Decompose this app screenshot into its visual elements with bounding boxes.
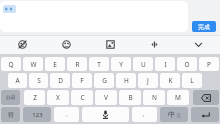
staticText: L — [190, 76, 194, 85]
button[interactable]: C — [71, 90, 93, 105]
staticText: Z — [33, 93, 37, 102]
staticText: T — [97, 60, 101, 69]
button[interactable]: N — [143, 90, 165, 105]
staticText: G — [102, 76, 107, 85]
button[interactable]: E — [45, 57, 65, 71]
button[interactable]: Move cursor — [132, 35, 176, 54]
staticText: X — [56, 93, 60, 102]
button[interactable]: I — [155, 57, 175, 71]
staticText: Q — [8, 60, 14, 69]
staticText: 中 — [168, 110, 175, 119]
button[interactable]: ， — [54, 107, 79, 122]
button[interactable]: V — [95, 90, 117, 105]
button[interactable]: Y — [111, 57, 131, 71]
staticText: 完成 — [198, 23, 210, 31]
button[interactable]: D — [50, 73, 70, 88]
staticText: W — [30, 60, 37, 69]
button[interactable]: X — [47, 90, 69, 105]
button[interactable]: U — [133, 57, 153, 71]
button[interactable]: L — [182, 73, 202, 88]
staticText: 。 — [142, 111, 148, 118]
button[interactable]: Backspace — [193, 90, 219, 105]
staticText: J — [147, 76, 149, 85]
button[interactable]: B — [119, 90, 141, 105]
button[interactable]: J — [138, 73, 158, 88]
staticText: D — [58, 76, 63, 85]
staticText: A — [15, 76, 20, 85]
staticText: I — [164, 60, 167, 69]
button[interactable]: W — [23, 57, 43, 71]
button[interactable]: G — [94, 73, 114, 88]
staticText: E — [53, 60, 57, 69]
staticText: B — [128, 93, 133, 102]
button[interactable]: Stickers — [88, 35, 132, 54]
staticText: O — [184, 60, 190, 69]
staticText: K — [168, 76, 173, 85]
button[interactable]: Emoji — [44, 35, 88, 54]
button[interactable]: F — [72, 73, 92, 88]
staticText: V — [104, 93, 108, 102]
button[interactable]: Return — [191, 107, 219, 122]
staticText: Y — [119, 60, 123, 69]
staticText: P — [207, 60, 211, 69]
staticText: ， — [64, 111, 70, 118]
staticText: 英 — [176, 113, 181, 119]
button[interactable] — [0, 1, 188, 32]
button[interactable]: Q — [1, 57, 21, 71]
button[interactable]: T — [89, 57, 109, 71]
staticText: M — [175, 93, 181, 102]
button[interactable]: 123 — [23, 107, 51, 122]
staticText: S — [37, 76, 41, 85]
button[interactable]: R — [67, 57, 87, 71]
staticText: H — [124, 76, 129, 85]
staticText: U — [141, 60, 146, 69]
button[interactable]: Emoticons — [0, 35, 44, 54]
button[interactable]: Voice input — [82, 107, 129, 122]
button[interactable]: K — [160, 73, 180, 88]
button[interactable]: M — [167, 90, 189, 105]
button[interactable]: Z — [24, 90, 45, 105]
button[interactable]: A — [8, 73, 27, 88]
button[interactable]: 分词 — [1, 90, 20, 105]
staticText: R — [75, 60, 80, 69]
button[interactable]: 。 — [132, 107, 157, 122]
button[interactable]: Hide keyboard — [176, 35, 220, 54]
staticText: 分词 — [6, 95, 15, 101]
staticText: C — [80, 93, 85, 102]
staticText: 123 — [32, 111, 43, 119]
button[interactable]: P — [199, 57, 219, 71]
button[interactable]: O — [177, 57, 197, 71]
button[interactable]: 中 — [160, 107, 188, 122]
button[interactable]: H — [116, 73, 136, 88]
button[interactable]: 符 — [1, 107, 20, 122]
staticText: F — [80, 76, 84, 85]
staticText: N — [152, 93, 157, 102]
button[interactable]: S — [29, 73, 48, 88]
button[interactable]: 完成 — [192, 21, 216, 32]
staticText: 符 — [8, 111, 14, 119]
